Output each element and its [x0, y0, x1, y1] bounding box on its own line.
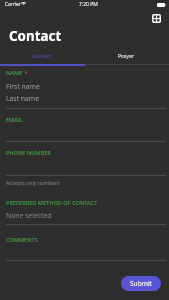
button[interactable]: Submit — [121, 276, 161, 291]
staticText: First name — [6, 82, 40, 91]
staticText: Submit — [130, 279, 152, 288]
button[interactable]: Contact — [0, 48, 84, 63]
button[interactable]: Last name — [0, 92, 169, 104]
button[interactable]: Grid view — [146, 8, 166, 28]
staticText: Carrier — [5, 1, 21, 8]
staticText: * — [23, 69, 28, 77]
staticText: PHONE NUMBER — [6, 149, 51, 157]
staticText: NAME — [6, 69, 23, 77]
button[interactable]: None selected — [0, 209, 169, 221]
staticText: Contact — [9, 27, 62, 45]
staticText: Last name — [6, 94, 40, 103]
button[interactable]: Prayer — [84, 48, 169, 63]
staticText: PREFERRED METHOD OF CONTACT — [6, 199, 98, 207]
staticText: None selected — [6, 211, 52, 220]
staticText: COMMENTS — [6, 236, 38, 244]
staticText: EMAIL — [6, 116, 23, 124]
staticText: Accepts only numbers — [6, 179, 60, 186]
staticText: 7:20 PM — [79, 1, 98, 8]
button[interactable]: First name — [0, 80, 169, 92]
staticText: Contact — [32, 52, 52, 59]
staticText: Prayer — [118, 52, 135, 59]
